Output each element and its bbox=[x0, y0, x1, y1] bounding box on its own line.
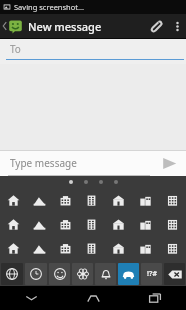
button[interactable]: Emoji 4 bbox=[78, 188, 105, 212]
button[interactable]: To bbox=[0, 39, 186, 59]
button[interactable]: Emoji 21 bbox=[159, 236, 186, 260]
button[interactable]: Emoji 9 bbox=[26, 212, 52, 236]
button[interactable]: Emoji 14 bbox=[159, 212, 186, 236]
button[interactable]: Emoji 19 bbox=[105, 236, 132, 260]
button[interactable]: Emoji 20 bbox=[132, 236, 159, 260]
staticText: New message bbox=[28, 19, 102, 34]
button[interactable]: Recent apps bbox=[124, 286, 186, 310]
button[interactable]: Send bbox=[152, 151, 186, 175]
button[interactable]: Emoji 1 bbox=[0, 188, 26, 212]
button[interactable]: Type message bbox=[0, 151, 152, 175]
staticText: To bbox=[10, 42, 21, 56]
button[interactable]: Symbols bbox=[141, 263, 162, 285]
button[interactable]: Places bbox=[118, 263, 139, 285]
button[interactable]: Navigate up bbox=[0, 14, 23, 38]
button[interactable]: Emoji 15 bbox=[0, 236, 26, 260]
button[interactable]: Emoji 10 bbox=[52, 212, 78, 236]
button[interactable]: Nature bbox=[72, 263, 93, 285]
staticText: Saving screenshot... bbox=[14, 2, 85, 12]
staticText: !?# bbox=[147, 269, 157, 279]
button[interactable]: Emoji 7 bbox=[159, 188, 186, 212]
button[interactable]: Objects bbox=[95, 263, 116, 285]
button[interactable]: Emoji 5 bbox=[105, 188, 132, 212]
button[interactable]: Smileys bbox=[49, 263, 70, 285]
button[interactable]: Emoji 6 bbox=[132, 188, 159, 212]
button[interactable]: Emoji 13 bbox=[132, 212, 159, 236]
button[interactable]: More options bbox=[168, 14, 186, 38]
button[interactable]: Recent bbox=[25, 263, 47, 285]
button[interactable]: Emoji 2 bbox=[26, 188, 52, 212]
staticText: Type message bbox=[10, 156, 77, 170]
button[interactable]: Delete bbox=[164, 263, 185, 285]
button[interactable]: Emoji 12 bbox=[105, 212, 132, 236]
button[interactable]: Emoji 3 bbox=[52, 188, 78, 212]
button[interactable]: Home bbox=[62, 286, 124, 310]
button[interactable]: Emoji 16 bbox=[26, 236, 52, 260]
button[interactable]: Attach bbox=[142, 14, 168, 38]
button[interactable]: Emoji 17 bbox=[52, 236, 78, 260]
button[interactable]: Emoji 8 bbox=[0, 212, 26, 236]
button[interactable]: Hide keyboard bbox=[0, 286, 62, 310]
button[interactable]: Emoji 18 bbox=[78, 236, 105, 260]
button[interactable]: Input languages bbox=[1, 263, 23, 285]
button[interactable]: Emoji 11 bbox=[78, 212, 105, 236]
